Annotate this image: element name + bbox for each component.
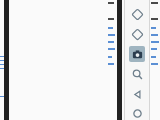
button[interactable]: Home <box>129 106 145 120</box>
button[interactable]: Zoom <box>129 66 145 82</box>
button[interactable]: Back <box>129 86 145 102</box>
button[interactable]: Rotate left <box>129 6 145 22</box>
button[interactable]: Rotate right <box>129 26 145 42</box>
button[interactable]: Screenshot <box>129 46 145 62</box>
